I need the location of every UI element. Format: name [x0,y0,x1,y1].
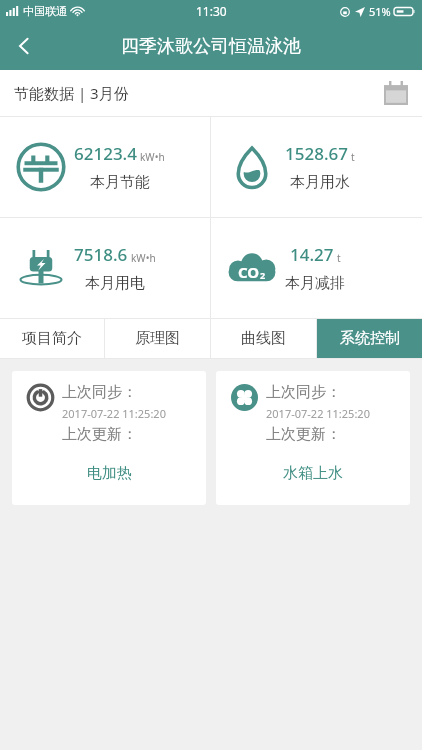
staticText: t [337,251,341,265]
button[interactable]: 1528.67 [211,117,422,217]
staticText: CO [238,262,260,282]
staticText: 上次同步： [62,383,137,402]
staticText: 2017-07-22 11:25:20 [62,406,166,421]
staticText: 中国联通 [23,4,67,18]
staticText: 上次更新： [62,425,137,444]
staticText: 7518.6 [74,243,128,266]
button[interactable]: 系统控制 [317,319,422,358]
staticText: 上次更新： [266,425,341,444]
staticText: t [351,150,355,164]
staticText: 曲线图 [241,329,286,348]
staticText: 电加热 [87,464,132,483]
staticText: 本月用电 [85,274,145,293]
button[interactable]: 原理图 [105,319,210,358]
staticText: 本月减排 [285,274,345,293]
button[interactable]: CO [211,218,422,318]
button[interactable]: 曲线图 [211,319,316,358]
button[interactable]: 项目简介 [0,319,104,358]
button[interactable]: 7518.6 [0,218,210,318]
staticText: 水箱上水 [283,464,343,483]
staticText: 原理图 [135,329,180,348]
staticText: 51% [369,4,391,19]
button[interactable]: 上次同步： [12,371,206,505]
staticText: 系统控制 [340,329,400,348]
staticText: 本月用水 [290,173,350,192]
button[interactable]: Select month [381,78,411,108]
button[interactable]: 上次同步： [216,371,410,505]
staticText: 2017-07-22 11:25:20 [266,406,370,421]
staticText: 2 [260,269,266,281]
staticText: 节能数据 | 3月份 [14,83,129,103]
staticText: kW•h [140,150,165,164]
staticText: 本月节能 [90,173,150,192]
staticText: 上次同步： [266,383,341,402]
staticText: 62123.4 [74,142,137,165]
staticText: 1528.67 [285,142,348,165]
button[interactable]: 62123.4 [0,117,210,217]
staticText: 四季沐歌公司恒温泳池 [121,35,301,58]
staticText: 项目简介 [22,329,82,348]
button[interactable]: Back [0,22,48,70]
staticText: 14.27 [290,243,334,266]
staticText: 11:30 [196,3,227,19]
staticText: kW•h [131,251,156,265]
